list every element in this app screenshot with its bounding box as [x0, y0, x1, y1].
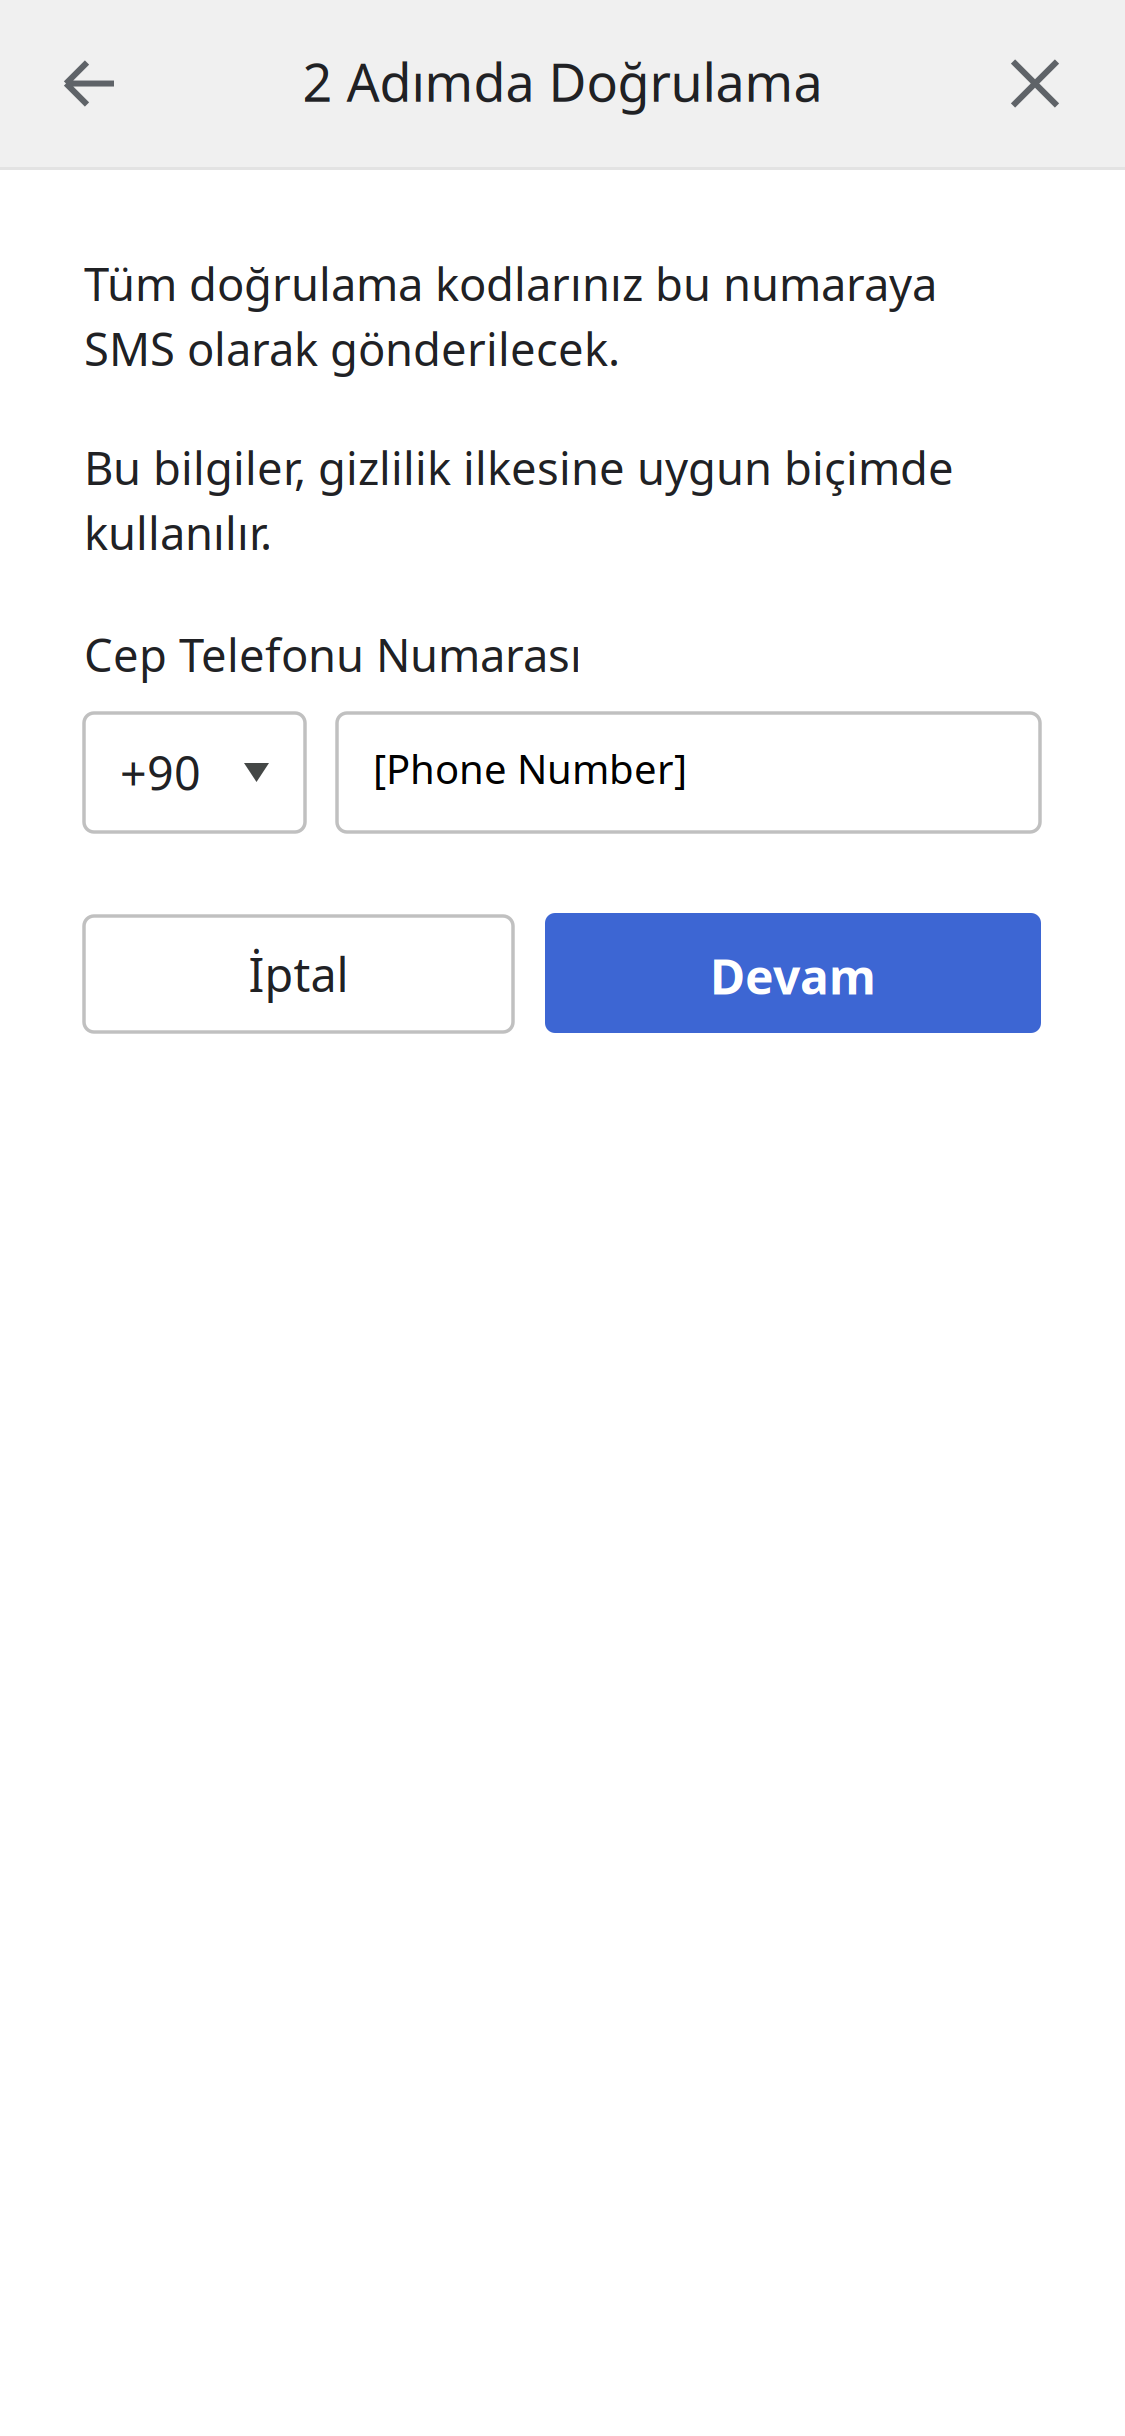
button[interactable]: Cep Telefonu Numarası: [337, 713, 1040, 832]
staticText: Devam: [710, 944, 876, 1008]
staticText: İptal: [248, 943, 348, 1005]
staticText: Bu bilgiler, gizlilik ilkesine uygun biç…: [84, 437, 954, 498]
staticText: Tüm doğrulama kodlarınız bu numaraya: [84, 253, 937, 314]
button[interactable]: Devam: [545, 913, 1041, 1033]
button[interactable]: Geri: [0, 0, 180, 167]
staticText: 2 Adımda Doğrulama: [302, 47, 822, 116]
staticText: SMS olarak gönderilecek.: [84, 318, 620, 379]
button[interactable]: İptal: [84, 914, 513, 1032]
button[interactable]: Kapat: [945, 0, 1125, 167]
staticText: Cep Telefonu Numarası: [84, 624, 582, 685]
staticText: kullanılır.: [84, 502, 272, 563]
staticText: [Phone Number]: [373, 742, 687, 795]
button[interactable]: Ülke kodu +90: [84, 713, 305, 832]
staticText: +90: [120, 741, 201, 803]
